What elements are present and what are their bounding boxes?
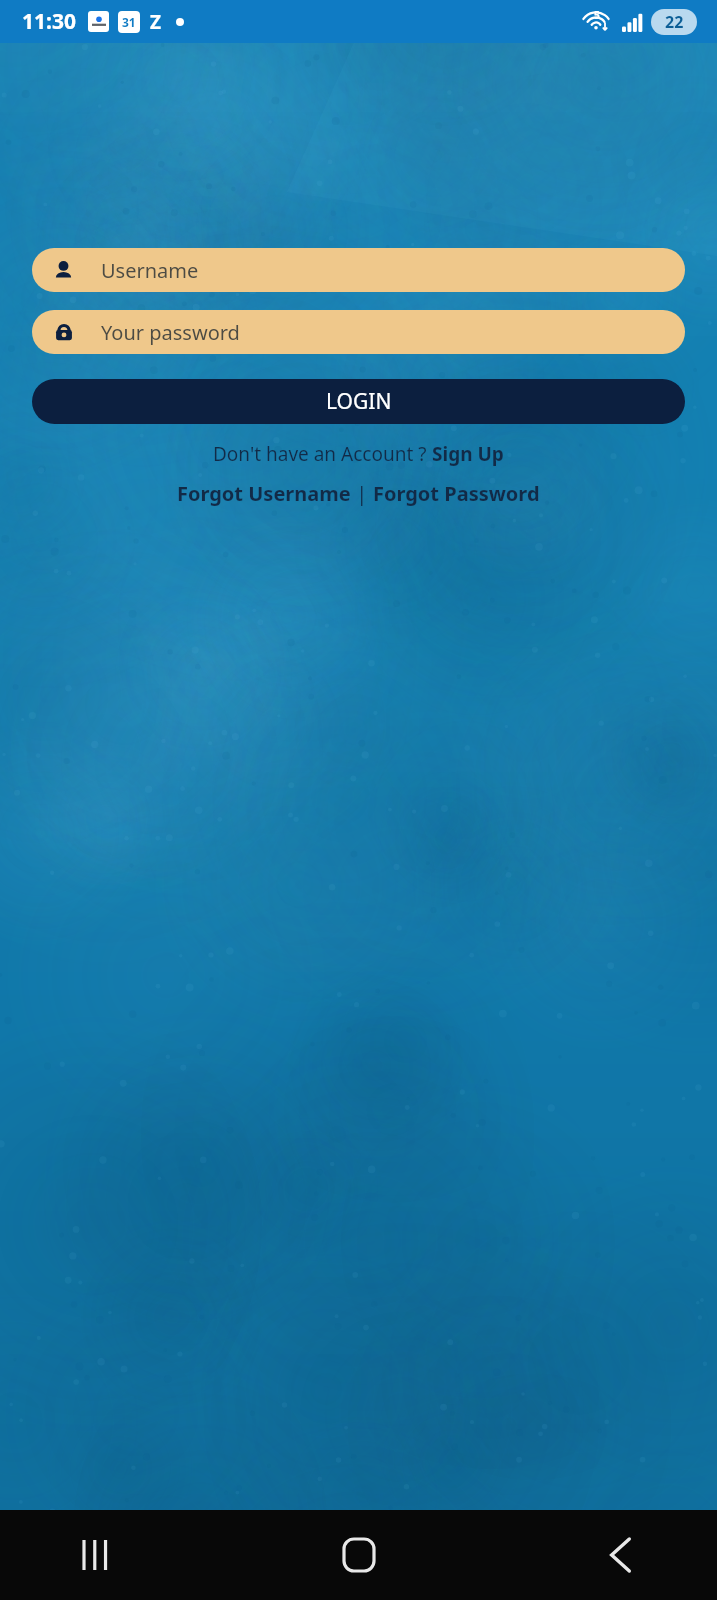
staticText: Forgot Password	[373, 480, 540, 507]
button[interactable]: Sign Up	[432, 441, 504, 467]
staticText: Z	[150, 9, 162, 35]
button[interactable]: Back	[585, 1519, 657, 1591]
staticText: 22	[665, 11, 684, 33]
button[interactable]: Forgot Password	[373, 480, 540, 507]
staticText: Sign Up	[432, 441, 504, 467]
staticText: |	[351, 480, 373, 507]
staticText: Your password	[101, 319, 240, 346]
button[interactable]: Forgot Username	[177, 480, 351, 507]
staticText: Don't have an Account ?	[213, 441, 432, 467]
staticText: Username	[101, 257, 199, 284]
button[interactable]: Recent apps	[60, 1519, 132, 1591]
button[interactable]: Home	[323, 1519, 395, 1591]
staticText: Forgot Username	[177, 480, 351, 507]
button[interactable]: Your password	[32, 310, 685, 354]
staticText: LOGIN	[326, 387, 392, 416]
staticText: 5	[594, 8, 600, 22]
staticText: 31	[122, 14, 136, 30]
staticText: 11:30	[22, 7, 76, 36]
button[interactable]: Username	[32, 248, 685, 292]
button[interactable]: LOGIN	[32, 379, 685, 424]
